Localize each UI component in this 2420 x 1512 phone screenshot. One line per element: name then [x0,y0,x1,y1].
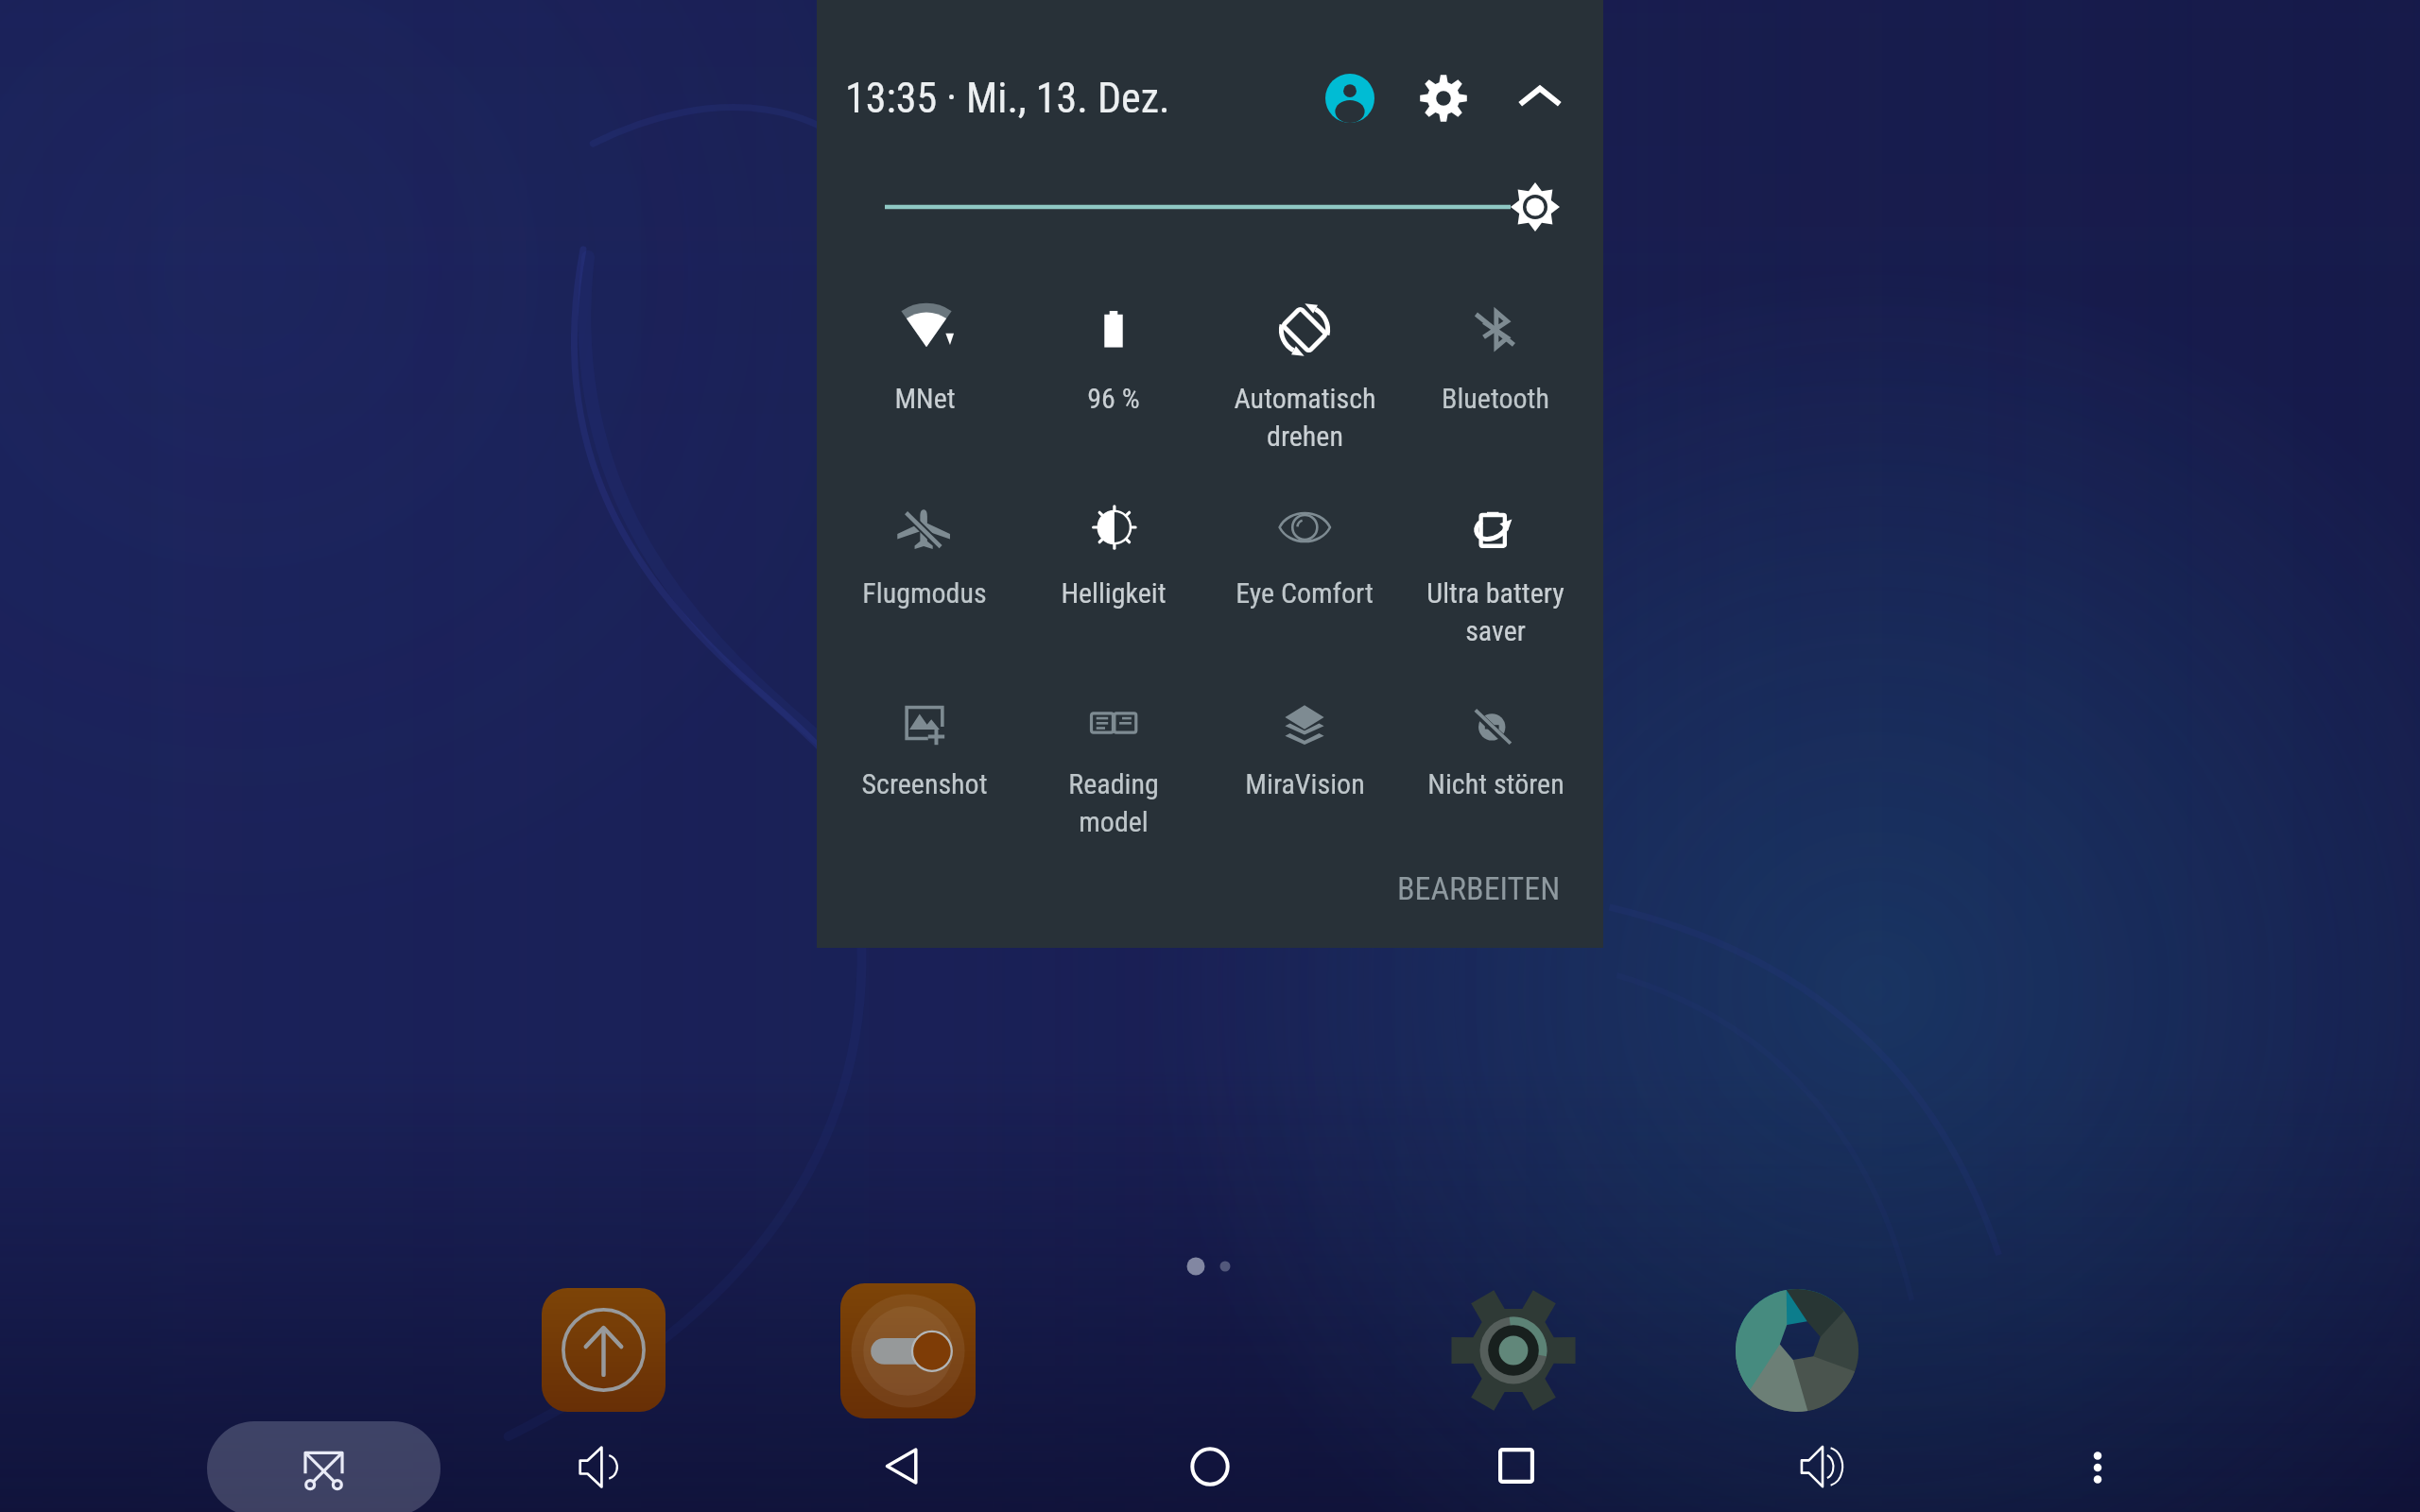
staticText: Nicht stören [1427,767,1564,800]
button[interactable]: Settings [1404,59,1483,138]
button[interactable]: User [1310,59,1390,138]
button[interactable]: Upload app [542,1288,665,1412]
staticText: Reading model [1068,767,1159,839]
staticText: Bluetooth [1442,382,1549,415]
button[interactable] [1399,262,1592,441]
button[interactable]: Toggle app [840,1283,976,1418]
staticText: Automatisch drehen [1234,382,1376,454]
button[interactable]: Brightness [855,170,1573,246]
button[interactable]: Recents [1482,1432,1550,1500]
button[interactable] [828,459,1021,639]
button[interactable] [1208,459,1401,639]
button[interactable]: More options [2066,1436,2128,1498]
staticText: Screenshot [861,767,988,800]
button[interactable] [828,262,1021,441]
staticText: MiraVision [1245,767,1365,800]
staticText: Helligkeit [1061,576,1167,610]
button[interactable]: Volume down [558,1426,639,1507]
button[interactable] [1017,655,1210,834]
button[interactable]: Home [1172,1429,1248,1504]
button[interactable] [1399,459,1592,639]
button[interactable] [1017,459,1210,639]
staticText: BEARBEITEN [1397,869,1561,907]
button[interactable]: Settings app [1450,1287,1577,1414]
button[interactable] [1399,655,1592,834]
button[interactable]: Back [867,1429,941,1503]
button[interactable] [1208,655,1401,834]
staticText: 13:35 · Mi., 13. Dez. [845,74,1170,123]
button[interactable] [1208,262,1401,441]
button[interactable]: Volume up [1781,1425,1863,1507]
button[interactable]: Screenshot [207,1421,441,1512]
staticText: Ultra battery saver [1426,576,1564,648]
button[interactable]: Camera app [1736,1289,1858,1412]
button[interactable] [1017,262,1210,441]
button[interactable] [828,655,1021,834]
staticText: Eye Comfort [1236,576,1374,610]
button[interactable]: BEARBEITEN [1384,856,1573,920]
staticText: Flugmodus [862,576,987,610]
button[interactable]: 13:35 · Mi., 13. Dez. [845,53,1280,144]
button[interactable]: Collapse [1500,59,1580,138]
staticText: 96 % [1087,382,1140,415]
staticText: MNet [894,382,956,415]
